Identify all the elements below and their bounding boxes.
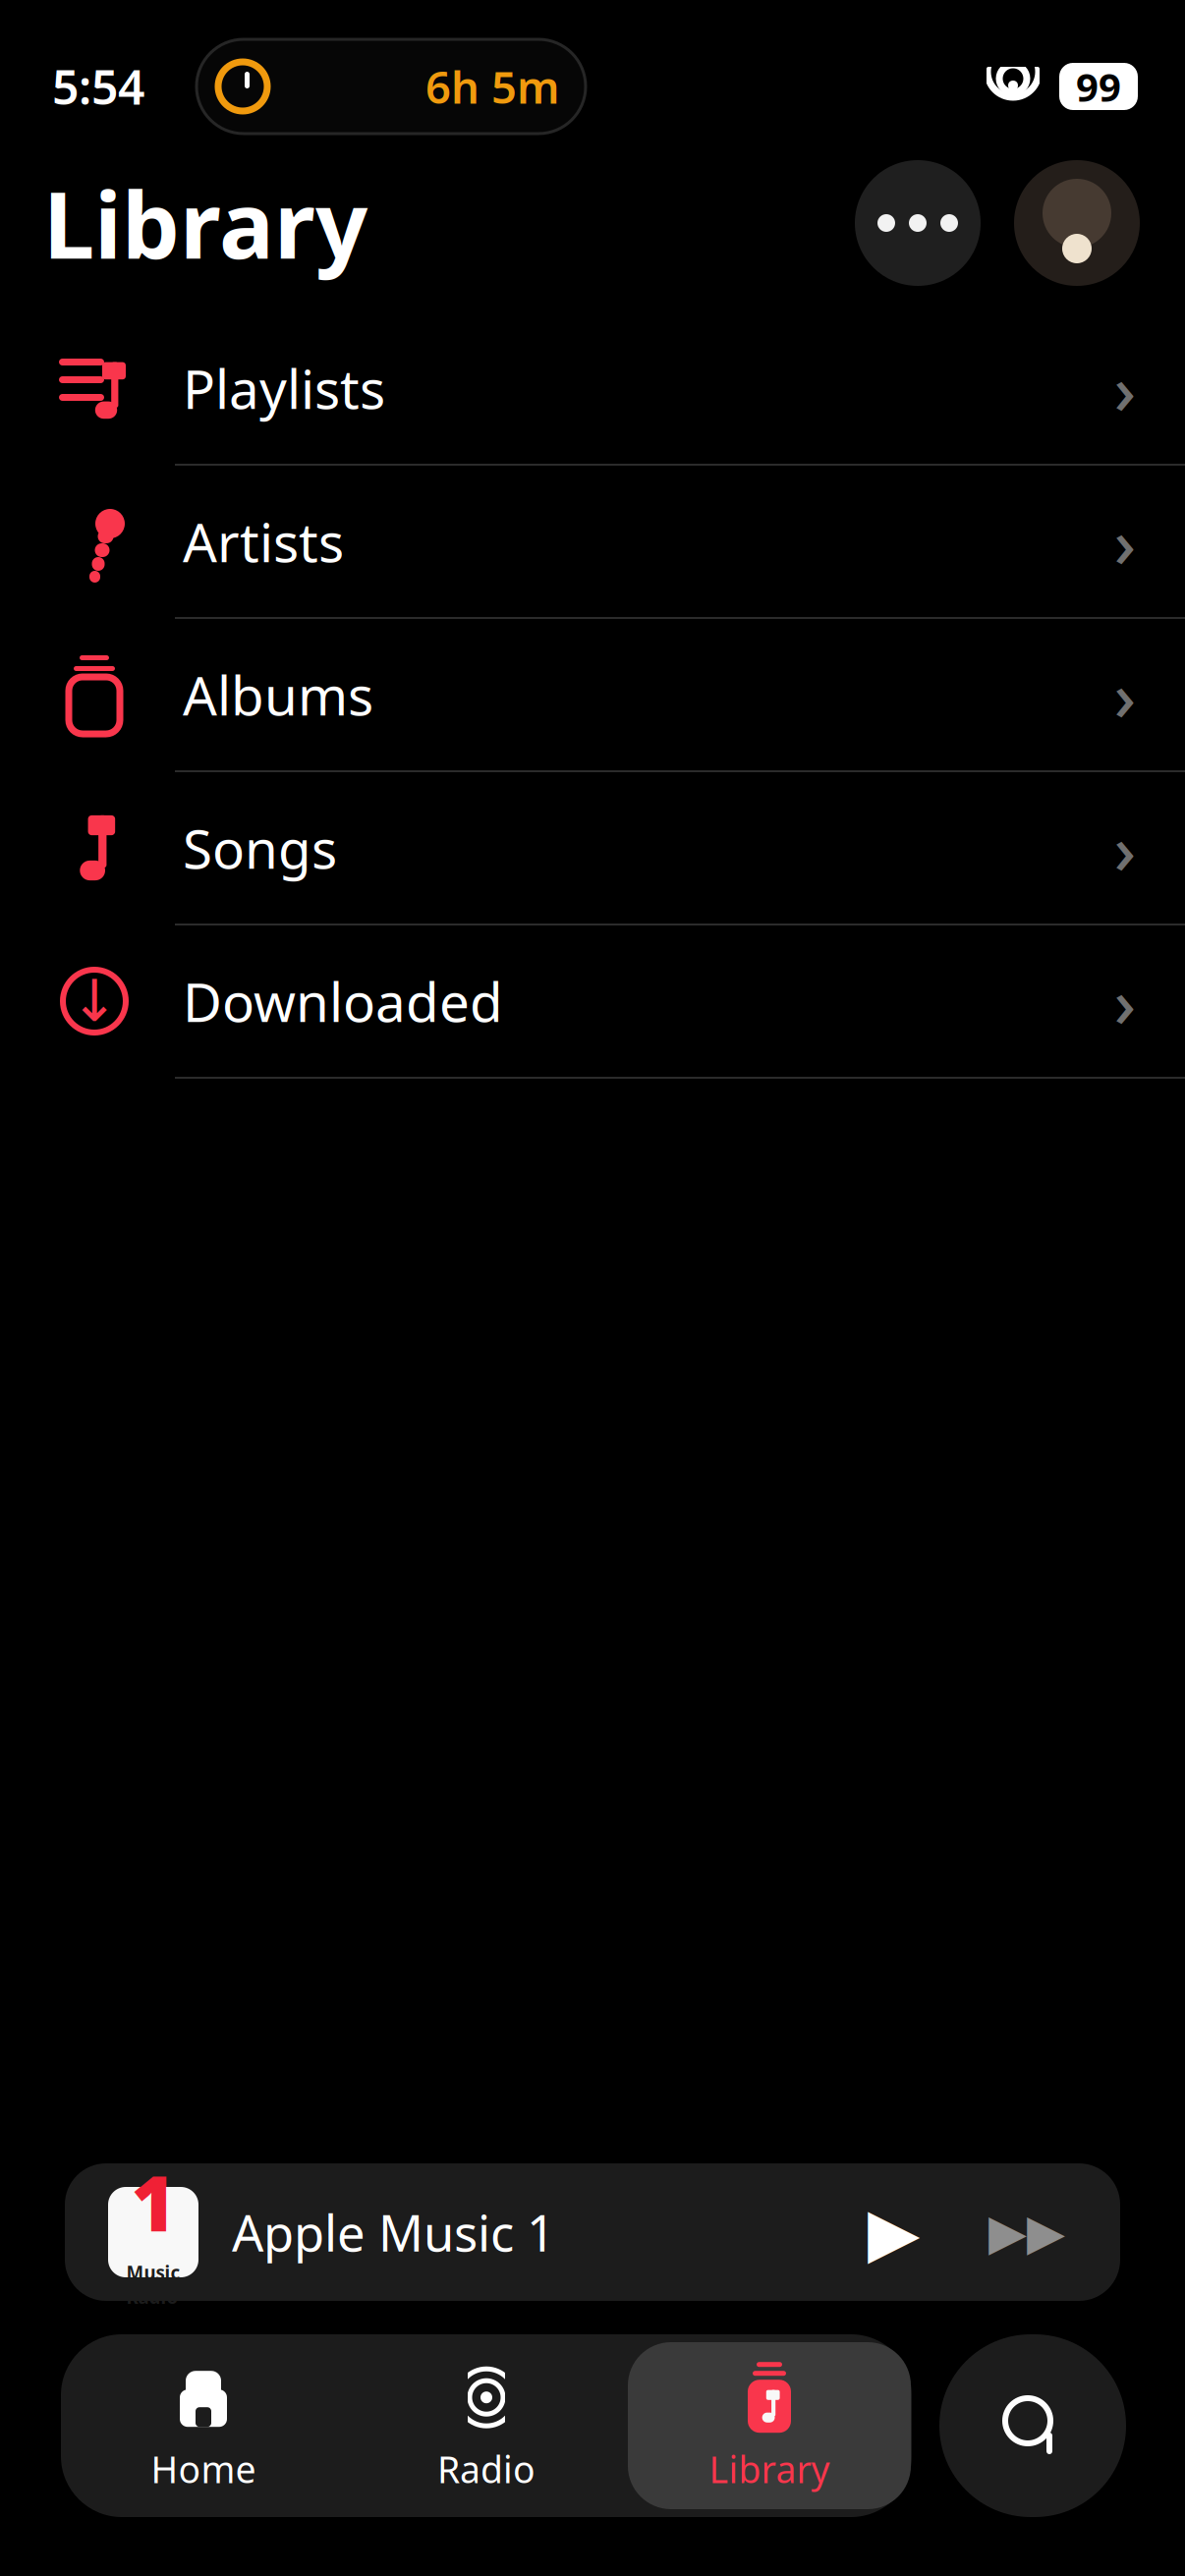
button[interactable]: Artists [0,466,1185,619]
staticText: Artists [183,506,344,577]
staticText: Songs [183,812,337,884]
staticText: Apple Music 1 [232,2199,555,2265]
button[interactable]: Account [1014,160,1140,286]
staticText: Playlists [183,352,385,424]
staticText: 5:54 [52,55,144,118]
button[interactable]: 1 [65,2163,1120,2301]
staticText: › [1114,496,1136,587]
staticText: Home [151,2445,256,2493]
staticText: Library [43,162,367,284]
staticText: Albums [183,659,373,730]
staticText: 6h 5m [425,57,560,116]
button[interactable]: Albums [0,619,1185,772]
staticText: 99 [1076,60,1121,112]
button[interactable]: Search [939,2334,1126,2517]
staticText: 1 [131,2151,175,2252]
button[interactable]: Playlists [0,312,1185,466]
staticText: Downloaded [183,965,503,1037]
staticText: › [1114,649,1136,740]
button[interactable]: Songs [0,772,1185,925]
button[interactable]: Library [628,2342,911,2509]
staticText: ↓ [70,968,118,1034]
staticText: › [1114,803,1136,893]
button[interactable]: Radio [345,2342,628,2509]
staticText: › [1114,956,1136,1046]
button[interactable]: Home [62,2342,345,2509]
button[interactable]: More options [855,160,981,286]
staticText: › [1114,343,1136,433]
staticText: Music Radio [126,2260,180,2309]
staticText: ▶▶ [988,2204,1065,2260]
staticText: Library [709,2445,830,2493]
staticText: Radio [437,2445,536,2493]
staticText: ▶ [868,2194,920,2271]
button[interactable]: ↓ [0,925,1185,1079]
